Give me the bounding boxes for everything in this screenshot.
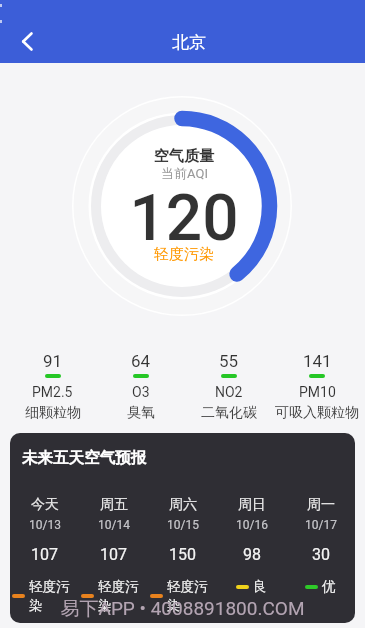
staticText: NO2 [215, 384, 243, 400]
staticText: 55 [219, 351, 239, 371]
staticText: 30 [312, 545, 330, 564]
staticText: 细颗粒物 [25, 404, 81, 422]
staticText: 今天 [31, 496, 59, 514]
staticText: 10/17 [305, 518, 337, 532]
staticText: 107 [31, 545, 58, 564]
staticText: 可吸入颗粒物 [275, 404, 359, 422]
staticText: 轻度污染 [167, 578, 215, 614]
staticText: 优 [322, 578, 336, 595]
staticText: 周五 [100, 496, 128, 514]
staticText: 10/13 [29, 518, 61, 532]
button[interactable]: 55 [185, 351, 273, 422]
staticText: 10/14 [98, 518, 130, 532]
staticText: 二氧化碳 [201, 404, 257, 422]
staticText: 北京 [172, 32, 206, 53]
staticText: 150 [169, 545, 196, 564]
staticText: 轻度污染 [154, 245, 214, 264]
staticText: 空气质量 [154, 147, 214, 166]
staticText: PM2.5 [32, 384, 73, 400]
staticText: 当前AQI [161, 165, 208, 181]
staticText: 120 [129, 181, 239, 256]
button[interactable]: 64 [97, 351, 185, 422]
staticText: 98 [243, 545, 261, 564]
button[interactable]: 未来五天空气预报 [10, 433, 355, 623]
staticText: 64 [131, 351, 151, 371]
staticText: 10/16 [236, 518, 268, 532]
staticText: O3 [132, 384, 150, 400]
staticText: 未来五天空气预报 [22, 448, 146, 468]
staticText: 易下APP • 4008891800.COM [60, 597, 305, 621]
staticText: 臭氧 [127, 404, 155, 422]
staticText: 周日 [238, 496, 266, 514]
button[interactable] [10, 23, 46, 59]
staticText: 10/15 [167, 518, 199, 532]
button[interactable]: 91 [8, 351, 97, 422]
staticText: 轻度污染 [98, 578, 146, 614]
staticText: 107 [100, 545, 127, 564]
staticText: 141 [303, 351, 332, 371]
staticText: 周六 [169, 496, 197, 514]
staticText: 轻度污染 [29, 578, 77, 614]
staticText: 91 [43, 351, 63, 371]
staticText: 良 [253, 578, 267, 595]
button[interactable]: 141 [273, 351, 361, 422]
staticText: PM10 [299, 384, 336, 400]
staticText: 周一 [307, 496, 335, 514]
